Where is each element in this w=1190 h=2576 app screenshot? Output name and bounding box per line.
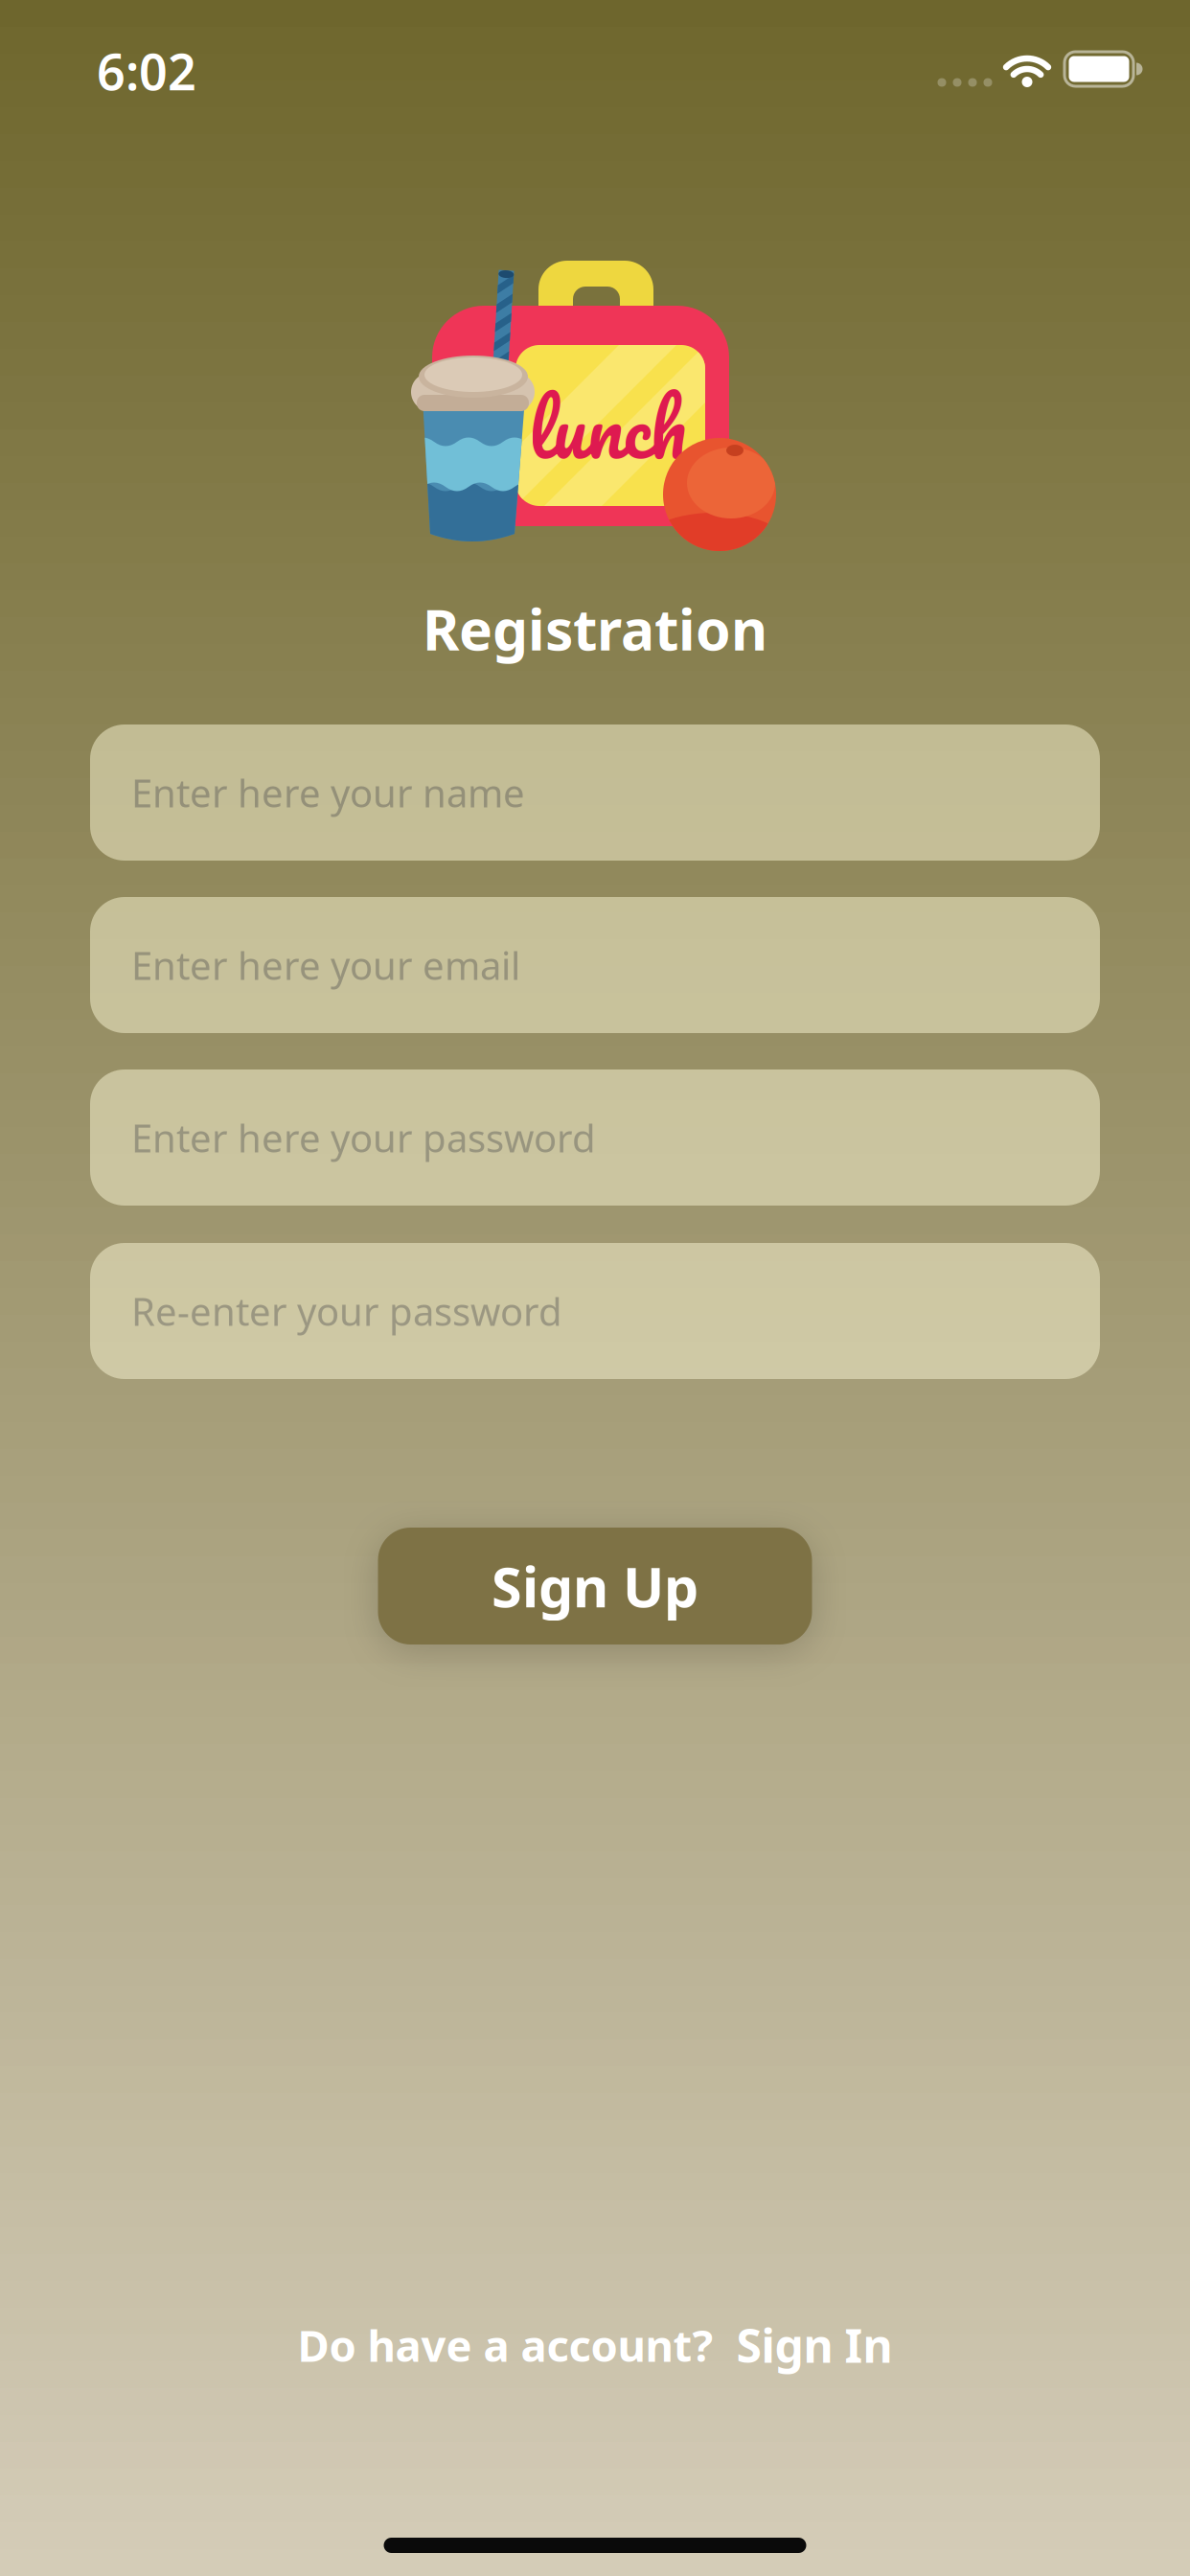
staticText: Enter here your email bbox=[131, 940, 520, 990]
staticText: Sign Up bbox=[492, 1550, 698, 1622]
staticText: lunch bbox=[528, 362, 687, 492]
staticText: Enter here your password bbox=[131, 1112, 596, 1163]
staticText: 6:02 bbox=[97, 38, 196, 104]
staticText: Registration bbox=[423, 591, 767, 666]
staticText: Do have a account? bbox=[297, 2316, 713, 2374]
staticText: Re-enter your password bbox=[131, 1286, 562, 1336]
staticText: Enter here your name bbox=[131, 767, 525, 818]
staticText: Sign In bbox=[736, 2314, 892, 2376]
button[interactable]: Sign Up bbox=[378, 1528, 812, 1644]
button[interactable]: Sign In bbox=[736, 2314, 892, 2376]
